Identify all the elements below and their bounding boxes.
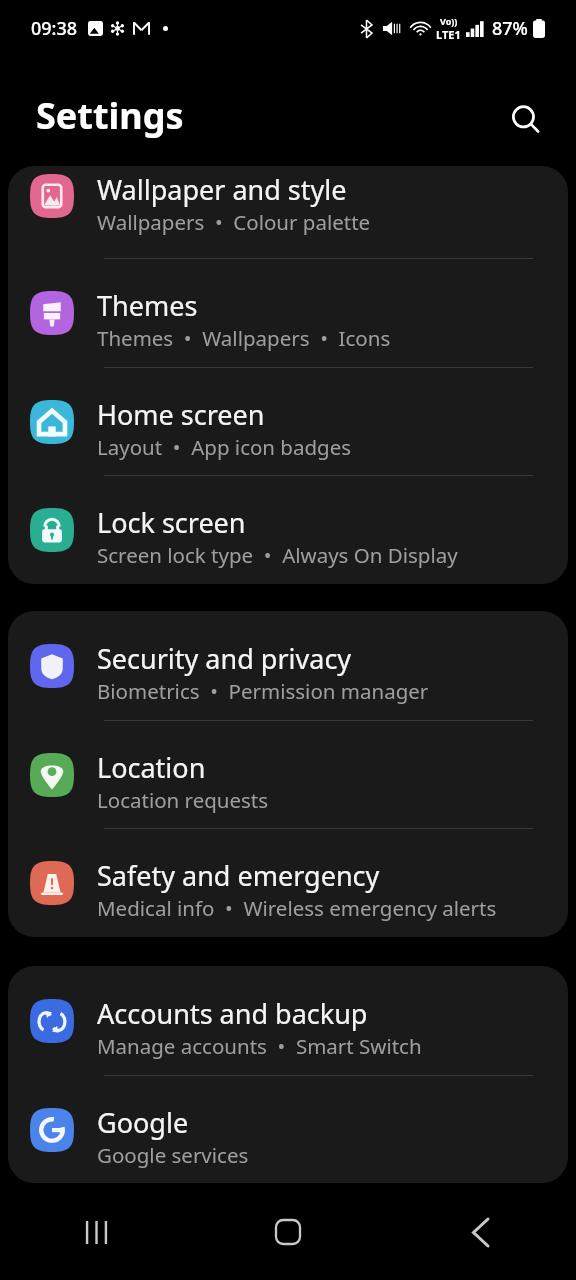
button[interactable]: Themes: [8, 258, 568, 367]
staticText: Biometrics • Permission manager: [97, 677, 429, 705]
button[interactable]: Recents: [0, 1184, 192, 1280]
staticText: Google services: [97, 1141, 249, 1169]
staticText: Lock screen: [97, 504, 246, 541]
staticText: Location: [97, 749, 206, 786]
staticText: LTE1: [436, 27, 461, 42]
button[interactable]: Location: [8, 720, 568, 829]
button[interactable]: Back: [384, 1184, 576, 1280]
staticText: Wallpapers • Colour palette: [97, 208, 371, 236]
staticText: Settings: [36, 91, 184, 140]
button[interactable]: Home: [192, 1184, 384, 1280]
staticText: Wallpaper and style: [97, 171, 347, 208]
staticText: Themes: [97, 287, 198, 324]
button[interactable]: Search: [502, 96, 550, 144]
staticText: Layout • App icon badges: [97, 433, 352, 461]
staticText: Location requests: [97, 786, 269, 814]
staticText: Vo)): [440, 15, 458, 27]
staticText: Safety and emergency: [97, 857, 380, 894]
staticText: 87%: [492, 16, 528, 41]
staticText: 09:38: [31, 16, 78, 41]
staticText: Manage accounts • Smart Switch: [97, 1032, 422, 1060]
button[interactable]: Lock screen: [8, 475, 568, 584]
staticText: Themes • Wallpapers • Icons: [97, 324, 391, 352]
staticText: Home screen: [97, 396, 265, 433]
button[interactable]: Safety and emergency: [8, 828, 568, 937]
staticText: Screen lock type • Always On Display: [97, 541, 458, 569]
button[interactable]: Wallpaper and style: [8, 166, 568, 258]
button[interactable]: Accounts and backup: [8, 966, 568, 1075]
staticText: Accounts and backup: [97, 995, 368, 1032]
button[interactable]: Home screen: [8, 367, 568, 476]
staticText: Security and privacy: [97, 640, 352, 677]
button[interactable]: Google: [8, 1075, 568, 1183]
staticText: Google: [97, 1104, 189, 1141]
staticText: Medical info • Wireless emergency alerts: [97, 894, 497, 922]
button[interactable]: Security and privacy: [8, 611, 568, 720]
